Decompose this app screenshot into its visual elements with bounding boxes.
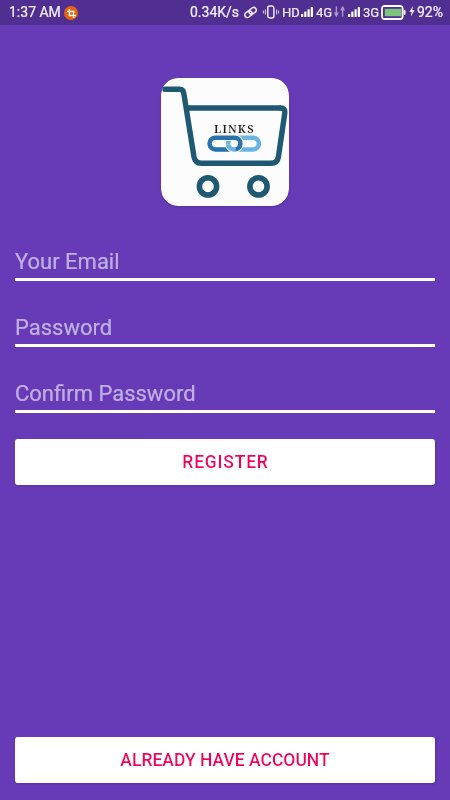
staticText: 0.34K/s bbox=[190, 4, 240, 20]
button[interactable]: Confirm Password bbox=[15, 378, 435, 412]
button[interactable]: Your Email bbox=[15, 246, 435, 280]
staticText: 1:37 AM bbox=[9, 4, 61, 20]
staticText: Confirm Password bbox=[15, 381, 196, 407]
staticText: Password bbox=[15, 315, 113, 341]
staticText: 92% bbox=[417, 4, 443, 20]
staticText: REGISTER bbox=[182, 452, 269, 473]
staticText: ALREADY HAVE ACCOUNT bbox=[120, 750, 330, 771]
button[interactable]: REGISTER bbox=[15, 439, 435, 485]
staticText: Your Email bbox=[15, 249, 120, 275]
staticText: HD bbox=[282, 5, 300, 20]
staticText: 3G bbox=[363, 5, 380, 20]
staticText: LINKS bbox=[214, 121, 255, 136]
button[interactable]: Password bbox=[15, 312, 435, 346]
button[interactable]: ALREADY HAVE ACCOUNT bbox=[15, 737, 435, 783]
staticText: 4G bbox=[316, 5, 333, 20]
